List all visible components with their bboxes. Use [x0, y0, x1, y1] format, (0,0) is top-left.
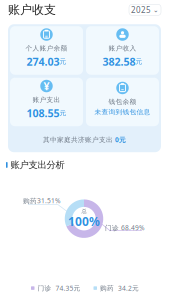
staticText: 门诊 68.49%	[105, 223, 145, 232]
staticText: ¥	[43, 79, 49, 93]
staticText: 100%	[68, 213, 100, 229]
staticText: 购药31.51%	[23, 196, 61, 205]
staticText: 门诊 74.35元	[37, 284, 80, 293]
staticText: 元	[59, 57, 66, 66]
staticText: 2025	[131, 4, 151, 15]
staticText: 账户收入	[108, 44, 136, 52]
staticText: ⌄	[153, 6, 159, 14]
button[interactable]: 个人账户余额	[10, 26, 83, 75]
button[interactable]: 2025	[129, 4, 161, 15]
button[interactable]: 钱包余额	[86, 78, 159, 126]
staticText: 个人账户余额	[25, 44, 67, 52]
staticText: 274.03	[26, 54, 59, 69]
staticText: 382.58	[102, 54, 135, 69]
staticText: 总	[81, 208, 86, 214]
staticText: 钱包余额	[108, 98, 136, 106]
button[interactable]: ¥	[10, 78, 83, 126]
staticText: 0元	[115, 135, 126, 144]
staticText: 账户支出	[32, 96, 60, 104]
staticText: 账户支出分析	[11, 159, 65, 171]
staticText: 元	[135, 57, 142, 66]
staticText: 元	[59, 109, 66, 117]
button[interactable]: 账户收入	[86, 26, 159, 75]
staticText: 未查询到钱包信息	[94, 108, 150, 116]
staticText: 购药 34.2元	[100, 284, 139, 293]
staticText: 108.55	[26, 106, 59, 120]
staticText: 其中家庭共济账户支出	[43, 136, 115, 144]
staticText: 账户收支	[8, 2, 56, 17]
